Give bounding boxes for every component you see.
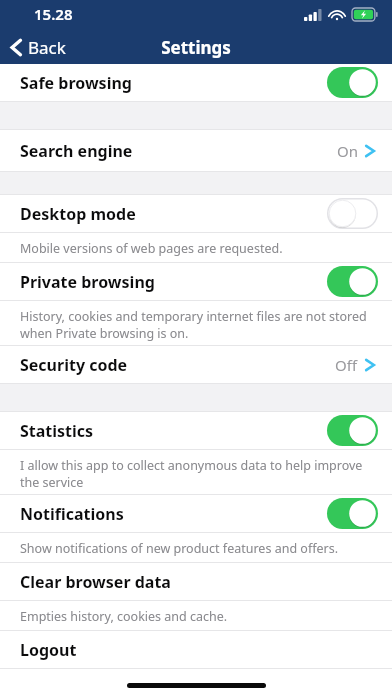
staticText: Desktop mode bbox=[20, 203, 327, 225]
staticText: Off bbox=[335, 355, 358, 375]
staticText: Show notifications of new product featur… bbox=[20, 540, 339, 557]
staticText: Statistics bbox=[20, 420, 327, 442]
button[interactable]: Security code bbox=[0, 346, 392, 383]
button[interactable]: Notifications bbox=[0, 495, 392, 532]
staticText: 15.28 bbox=[34, 4, 73, 24]
staticText: Empties history, cookies and cache. bbox=[20, 608, 228, 625]
button[interactable]: Search engine bbox=[0, 130, 392, 171]
staticText: History, cookies and temporary internet … bbox=[20, 308, 367, 341]
staticText: Search engine bbox=[20, 140, 337, 162]
staticText: Logout bbox=[20, 639, 77, 661]
staticText: Safe browsing bbox=[20, 72, 327, 94]
button[interactable]: Logout bbox=[0, 631, 392, 668]
button[interactable]: Desktop mode bbox=[0, 195, 392, 232]
staticText: On bbox=[337, 141, 358, 161]
button[interactable]: Clear browser data bbox=[0, 563, 392, 600]
button[interactable]: Safe browsing bbox=[0, 64, 392, 101]
staticText: I allow this app to collect anonymous da… bbox=[20, 457, 363, 490]
staticText: Private browsing bbox=[20, 271, 327, 293]
staticText: Settings bbox=[161, 36, 231, 59]
staticText: Notifications bbox=[20, 503, 327, 525]
button[interactable]: Statistics bbox=[0, 412, 392, 449]
button[interactable]: Back bbox=[0, 30, 76, 64]
button[interactable]: Private browsing bbox=[0, 263, 392, 300]
staticText: Back bbox=[28, 36, 66, 59]
staticText: Mobile versions of web pages are request… bbox=[20, 240, 283, 257]
staticText: Clear browser data bbox=[20, 571, 171, 593]
staticText: Security code bbox=[20, 354, 335, 376]
